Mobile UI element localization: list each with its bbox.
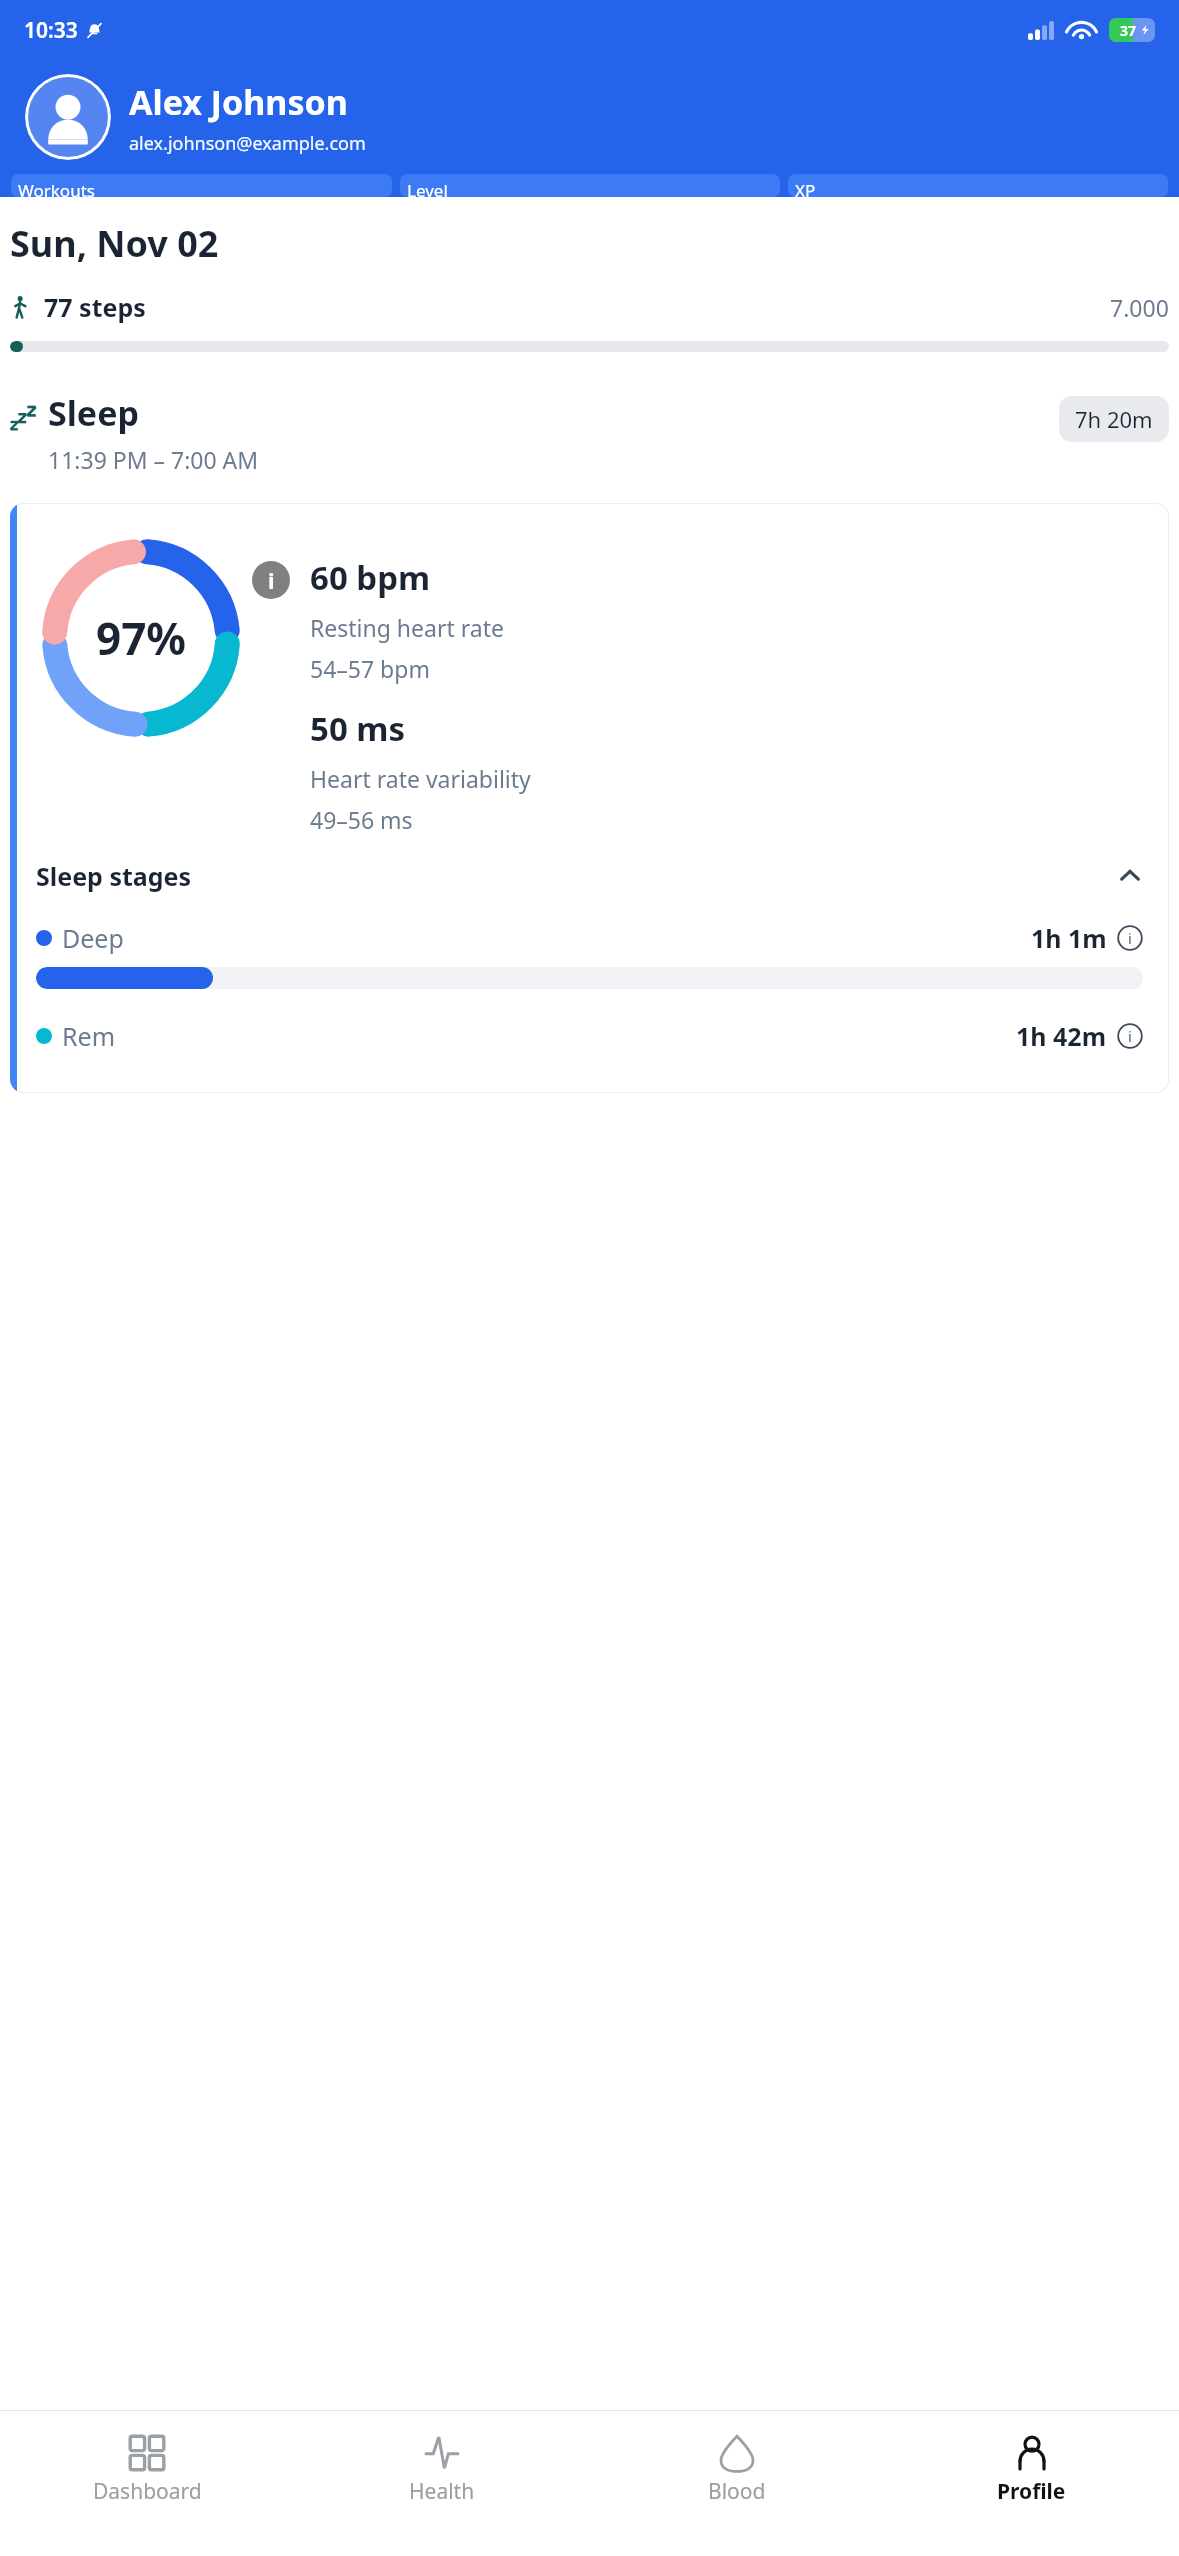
staticText: Sleep stages: [36, 859, 192, 893]
button[interactable]: Level: [400, 174, 780, 197]
staticText: XP: [795, 179, 816, 197]
staticText: Level: [407, 179, 448, 197]
other: Collapse: [1117, 863, 1143, 889]
button[interactable]: [25, 74, 111, 160]
button[interactable]: Info: [252, 561, 290, 599]
staticText: 54–57 bpm: [310, 653, 430, 684]
staticText: 77 steps: [44, 290, 146, 324]
button[interactable]: Deep: [36, 921, 1143, 989]
button[interactable]: Info: [1117, 925, 1143, 951]
staticText: Sun, Nov 02: [10, 219, 219, 268]
staticText: Resting heart rate: [310, 612, 504, 643]
staticText: 1h 42m: [1016, 1019, 1107, 1053]
staticText: i: [268, 565, 275, 595]
staticText: 1h 1m: [1031, 921, 1107, 955]
staticText: 49–56 ms: [310, 804, 413, 835]
button[interactable]: Health: [294, 2411, 589, 2556]
staticText: 97%: [96, 608, 187, 668]
button[interactable]: Profile: [884, 2411, 1179, 2556]
staticText: Heart rate variability: [310, 763, 531, 794]
staticText: Profile: [997, 2477, 1066, 2506]
staticText: i: [1128, 1026, 1132, 1046]
staticText: Blood: [708, 2477, 766, 2506]
staticText: Sleep: [48, 390, 139, 436]
button[interactable]: Dashboard: [0, 2411, 294, 2556]
staticText: i: [1128, 928, 1132, 948]
button[interactable]: Sleep: [10, 390, 1169, 475]
button[interactable]: 97%: [10, 503, 1169, 1093]
staticText: 7.000: [1110, 292, 1169, 323]
button[interactable]: 7h 20m: [1059, 396, 1169, 442]
staticText: 10:33: [24, 16, 78, 45]
button[interactable]: Workouts: [11, 174, 392, 197]
staticText: 11:39 PM – 7:00 AM: [48, 444, 259, 475]
staticText: Health: [409, 2477, 475, 2506]
staticText: 7h 20m: [1075, 404, 1153, 434]
staticText: 60 bpm: [310, 555, 431, 600]
staticText: Dashboard: [93, 2477, 202, 2506]
staticText: 50 ms: [310, 706, 406, 751]
staticText: Rem: [62, 1019, 116, 1053]
button[interactable]: Sleep stages: [36, 859, 1143, 893]
staticText: alex.johnson@example.com: [129, 131, 366, 156]
staticText: Workouts: [18, 179, 95, 197]
button[interactable]: XP: [788, 174, 1168, 197]
button[interactable]: Blood: [589, 2411, 884, 2556]
button[interactable]: 77 steps: [10, 290, 1169, 324]
button[interactable]: Info: [1117, 1023, 1143, 1049]
staticText: Deep: [62, 921, 124, 955]
staticText: Alex Johnson: [129, 79, 348, 125]
staticText: 37: [1120, 21, 1137, 40]
